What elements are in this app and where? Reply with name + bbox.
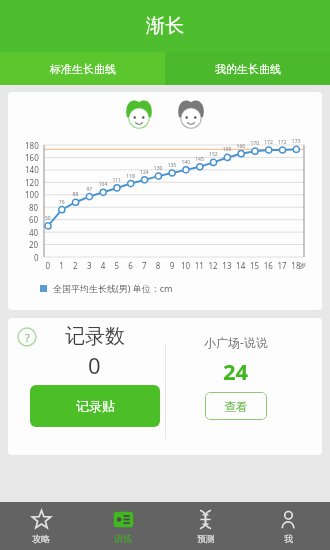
- staticText: 攻略: [32, 533, 50, 544]
- staticText: 记录数: [65, 324, 125, 349]
- button[interactable]: 标准生长曲线: [0, 52, 165, 85]
- button[interactable]: 记录贴: [30, 385, 160, 427]
- staticText: 我的生长曲线: [215, 62, 281, 76]
- staticText: 标准生长曲线: [50, 62, 116, 76]
- staticText: 24: [223, 356, 249, 386]
- staticText: 预测: [197, 533, 215, 544]
- staticText: 渐长: [146, 14, 184, 38]
- staticText: 全国平均生长线(男) 单位：cm: [53, 282, 173, 294]
- button[interactable]: 我的生长曲线: [165, 52, 330, 85]
- button[interactable]: 男孩: [122, 99, 156, 133]
- staticText: 0: [88, 350, 101, 380]
- button[interactable]: 训练: [82, 502, 164, 550]
- button[interactable]: 查看: [205, 392, 267, 420]
- staticText: 训练: [114, 533, 132, 544]
- staticText: ?: [25, 330, 30, 345]
- button[interactable]: 女孩: [174, 99, 208, 133]
- button[interactable]: 我: [247, 502, 330, 550]
- staticText: 我: [284, 533, 293, 544]
- button[interactable]: 攻略: [0, 502, 82, 550]
- staticText: 查看: [224, 399, 248, 414]
- button[interactable]: 帮助: [17, 327, 37, 347]
- staticText: 记录贴: [76, 398, 115, 414]
- button[interactable]: 预测: [164, 502, 247, 550]
- staticText: 小广场-说说: [204, 334, 268, 350]
